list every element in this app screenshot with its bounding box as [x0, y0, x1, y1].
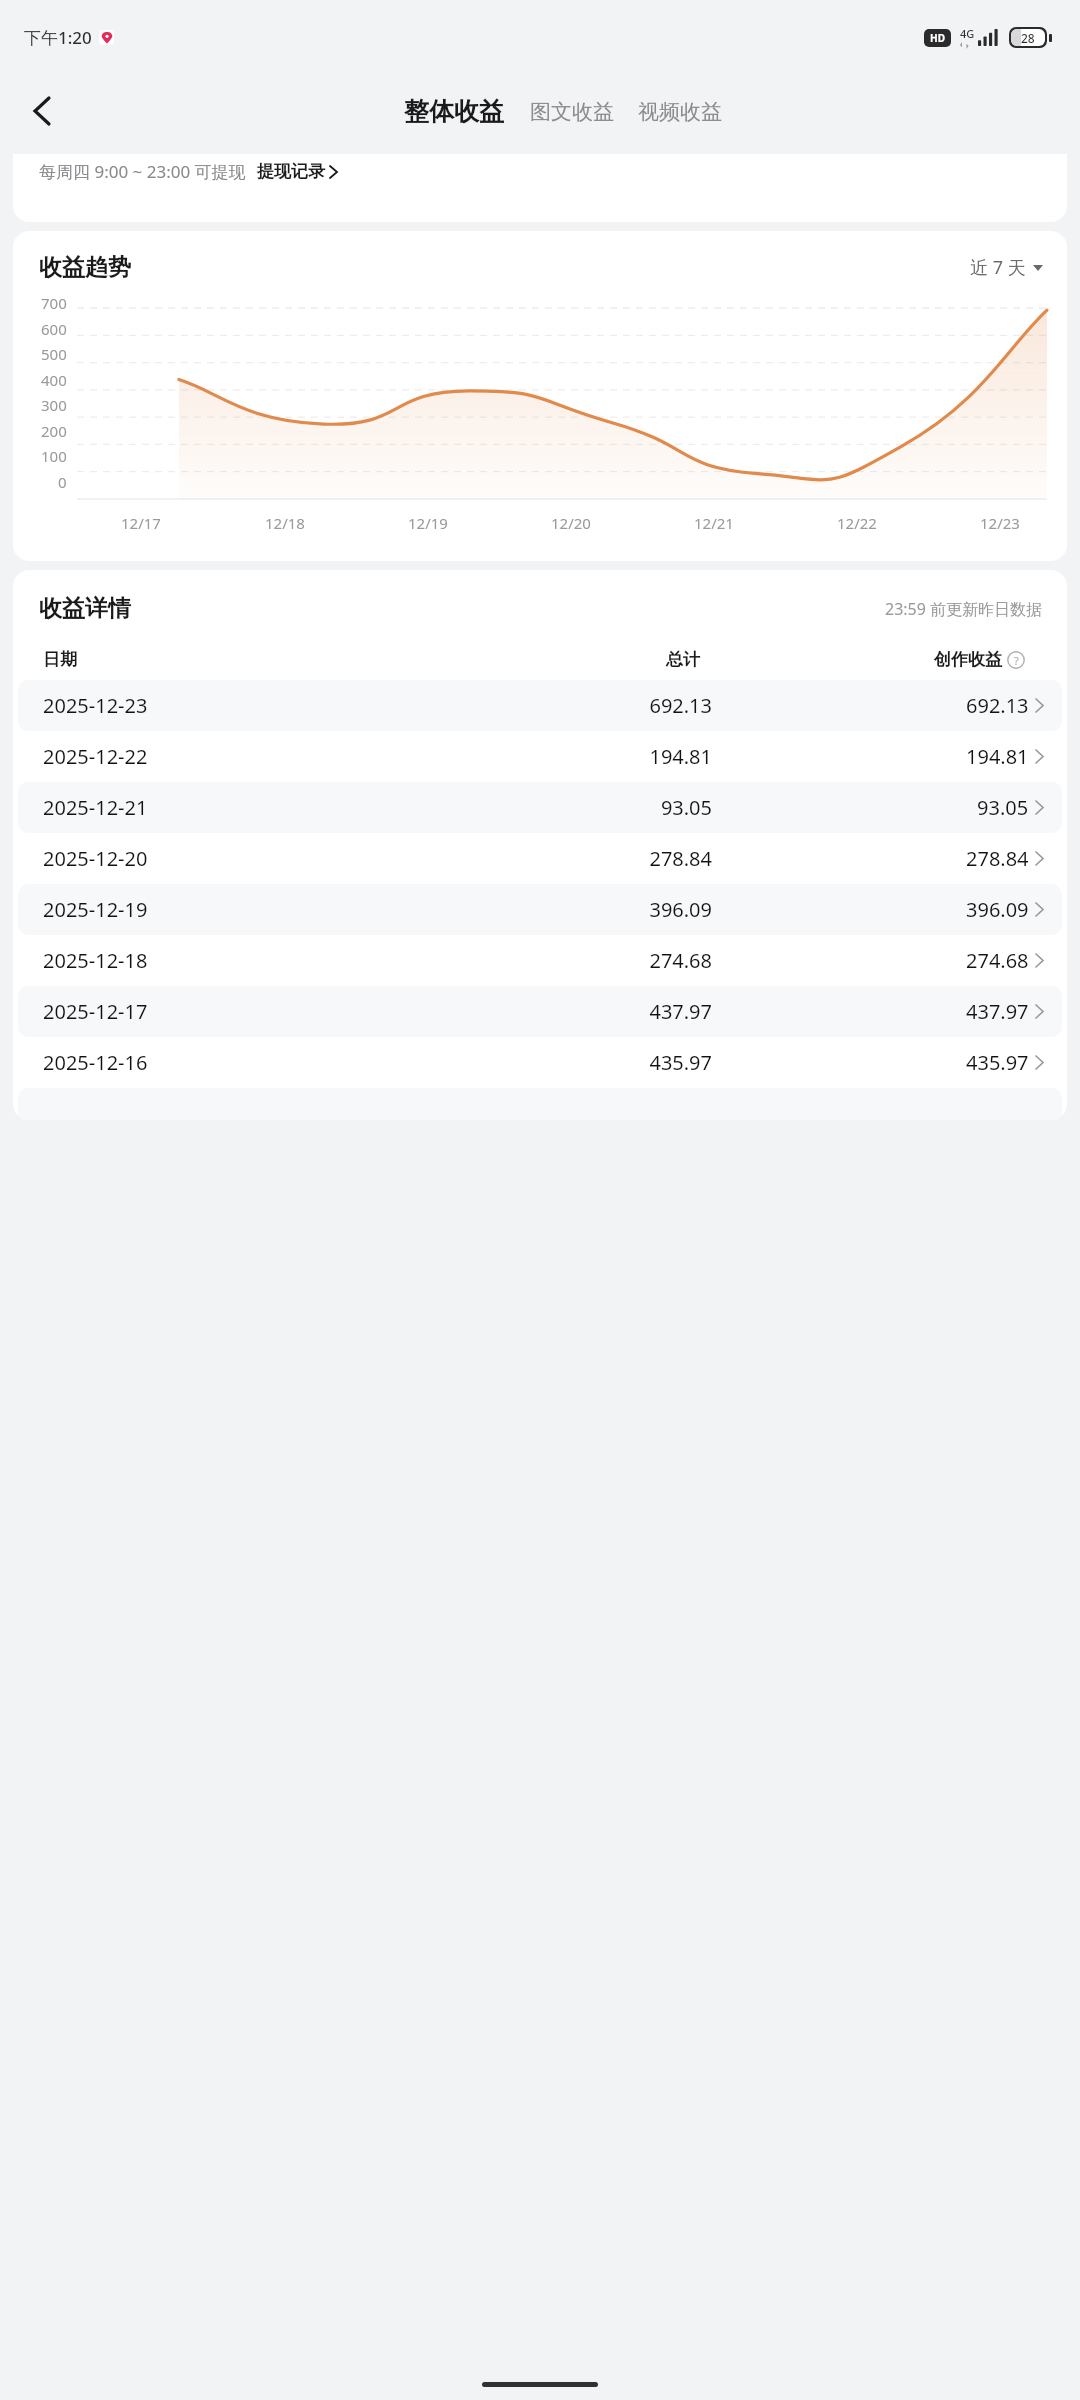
staticText: 396.09: [966, 896, 1029, 923]
staticText: 12/18: [265, 513, 305, 533]
staticText: 12/17: [121, 513, 161, 533]
staticText: 图文收益: [530, 99, 614, 125]
staticText: HD: [930, 31, 945, 45]
staticText: ?: [1014, 653, 1019, 668]
staticText: 194.81: [401, 743, 712, 770]
button[interactable]: Help: [1007, 651, 1025, 669]
staticText: 收益详情: [39, 594, 131, 623]
staticText: 2025-12-16: [43, 1049, 401, 1076]
staticText: 近 7 天: [970, 255, 1026, 280]
button[interactable]: 近 7 天: [970, 255, 1043, 280]
staticText: 23:59 前更新昨日数据: [885, 598, 1043, 620]
staticText: 2025-12-20: [43, 845, 401, 872]
button[interactable]: 整体收益: [390, 88, 518, 135]
staticText: 12/19: [408, 513, 448, 533]
button[interactable]: 提现记录: [257, 161, 337, 182]
button[interactable]: 2025-12-22: [18, 731, 1062, 782]
staticText: 93.05: [401, 794, 712, 821]
staticText: 396.09: [401, 896, 712, 923]
button[interactable]: 2025-12-20: [18, 833, 1062, 884]
staticText: 600: [41, 319, 67, 339]
staticText: 2025-12-22: [43, 743, 401, 770]
button[interactable]: 图文收益: [518, 91, 626, 133]
staticText: 总计: [395, 649, 700, 670]
staticText: 100: [41, 446, 67, 466]
staticText: 收益趋势: [39, 253, 131, 282]
staticText: 435.97: [401, 1049, 712, 1076]
button[interactable]: 2025-12-17: [18, 986, 1062, 1037]
button[interactable]: 2025-12-21: [18, 782, 1062, 833]
staticText: 日期: [43, 649, 395, 670]
staticText: 435.97: [966, 1049, 1029, 1076]
staticText: 整体收益: [404, 96, 504, 127]
staticText: 12/20: [551, 513, 591, 533]
staticText: 278.84: [401, 845, 712, 872]
button[interactable]: Back: [14, 83, 70, 139]
button[interactable]: 2025-12-16: [18, 1037, 1062, 1088]
staticText: 0: [58, 472, 67, 492]
staticText: 500: [41, 344, 67, 364]
staticText: 274.68: [966, 947, 1029, 974]
staticText: 400: [41, 370, 67, 390]
staticText: 692.13: [966, 692, 1029, 719]
staticText: 28: [1021, 30, 1035, 46]
staticText: 每周四 9:00 ~ 23:00 可提现: [39, 160, 246, 183]
staticText: 提现记录: [257, 161, 325, 182]
staticText: 2025-12-18: [43, 947, 401, 974]
staticText: 12/23: [980, 513, 1020, 533]
staticText: 200: [41, 421, 67, 441]
staticText: 视频收益: [638, 99, 722, 125]
staticText: 4G: [960, 26, 975, 41]
staticText: 12/21: [694, 513, 734, 533]
staticText: 194.81: [966, 743, 1029, 770]
staticText: 700: [41, 293, 67, 313]
staticText: 692.13: [401, 692, 712, 719]
staticText: 12/22: [837, 513, 877, 533]
staticText: 下午1:20: [24, 26, 92, 49]
button[interactable]: 2025-12-23: [18, 680, 1062, 731]
staticText: 创作收益: [934, 649, 1002, 670]
staticText: 437.97: [966, 998, 1029, 1025]
button[interactable]: 2025-12-18: [18, 935, 1062, 986]
staticText: 278.84: [966, 845, 1029, 872]
staticText: 2025-12-21: [43, 794, 401, 821]
staticText: 300: [41, 395, 67, 415]
staticText: 437.97: [401, 998, 712, 1025]
staticText: 2025-12-17: [43, 998, 401, 1025]
staticText: 274.68: [401, 947, 712, 974]
staticText: 2025-12-19: [43, 896, 401, 923]
staticText: 93.05: [977, 794, 1029, 821]
button[interactable]: 2025-12-19: [18, 884, 1062, 935]
button[interactable]: 视频收益: [626, 91, 734, 133]
staticText: 2025-12-23: [43, 692, 401, 719]
